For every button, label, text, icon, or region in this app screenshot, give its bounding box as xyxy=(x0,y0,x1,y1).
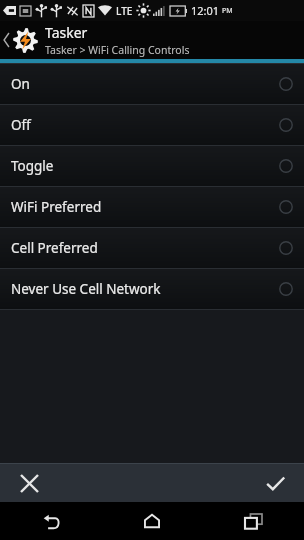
staticText: Toggle xyxy=(11,157,279,175)
button[interactable]: Toggle xyxy=(0,146,304,186)
button[interactable]: WiFi Preferred xyxy=(0,187,304,227)
button[interactable]: Back xyxy=(16,502,86,540)
staticText: Tasker > WiFi Calling Controls xyxy=(45,43,190,57)
button[interactable]: Tasker xyxy=(0,21,304,59)
staticText: WiFi Preferred xyxy=(11,198,279,216)
staticText: LTE xyxy=(116,4,133,18)
button[interactable]: Home xyxy=(117,502,187,540)
button[interactable]: Recent apps xyxy=(218,502,288,540)
button[interactable]: Cancel xyxy=(0,464,58,502)
button[interactable]: Cell Preferred xyxy=(0,228,304,268)
staticText: 12:01 xyxy=(191,3,220,18)
button[interactable]: Off xyxy=(0,105,304,145)
staticText: Cell Preferred xyxy=(11,239,279,257)
button[interactable]: On xyxy=(0,64,304,104)
staticText: Never Use Cell Network xyxy=(11,280,279,298)
staticText: PM xyxy=(222,6,233,16)
staticText: Tasker xyxy=(45,23,88,42)
button[interactable]: Never Use Cell Network xyxy=(0,269,304,309)
staticText: Off xyxy=(11,116,279,134)
button[interactable]: Accept xyxy=(246,464,304,502)
staticText: On xyxy=(11,75,279,93)
